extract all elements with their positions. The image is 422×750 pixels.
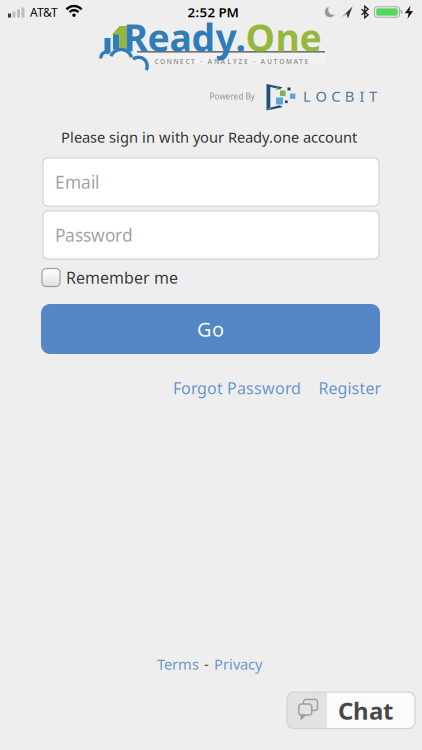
button[interactable]: Chat <box>287 692 415 728</box>
staticText: Ready. <box>123 12 245 62</box>
staticText: One <box>245 12 321 62</box>
button[interactable]: Forgot Password <box>173 377 301 399</box>
staticText: 2:52 PM <box>187 3 238 21</box>
staticText: C <box>331 86 340 106</box>
button[interactable]: Email <box>43 158 379 206</box>
staticText: Password <box>55 223 133 246</box>
staticText: AT&T <box>30 4 58 20</box>
staticText: O <box>316 86 327 106</box>
staticText: B <box>345 86 355 106</box>
staticText: L <box>303 86 311 106</box>
staticText: I <box>359 86 364 106</box>
staticText: Privacy <box>214 654 262 674</box>
staticText: Terms <box>157 654 199 674</box>
staticText: - <box>204 654 209 674</box>
button[interactable]: Remember me <box>42 266 252 288</box>
button[interactable]: Terms <box>157 654 199 674</box>
button[interactable]: Go <box>41 304 380 354</box>
button[interactable]: Privacy <box>214 654 262 674</box>
staticText: CONNECT · ANALYZE · AUTOMATE <box>154 57 309 66</box>
staticText: Email <box>55 170 99 193</box>
staticText: Please sign in with your Ready.one accou… <box>61 127 357 147</box>
staticText: T <box>369 86 377 106</box>
staticText: Go <box>197 316 224 342</box>
staticText: Chat <box>338 695 393 726</box>
staticText: Remember me <box>66 267 178 288</box>
button[interactable]: Register <box>318 377 381 399</box>
staticText: Forgot Password <box>173 377 301 399</box>
staticText: Register <box>318 377 381 399</box>
button[interactable]: Password <box>43 211 379 259</box>
staticText: Powered By <box>209 91 254 102</box>
